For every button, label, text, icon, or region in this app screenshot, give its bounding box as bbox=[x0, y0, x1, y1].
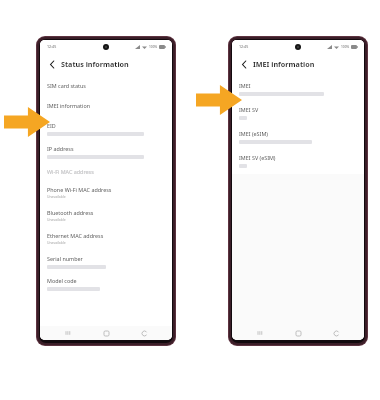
button[interactable]: IMEI SV bbox=[232, 102, 364, 126]
button[interactable]: IMEI SV (eSIM) bbox=[232, 150, 364, 174]
staticText: Unavailable bbox=[47, 240, 66, 245]
staticText: SIM card status bbox=[47, 82, 86, 89]
staticText: 100% bbox=[341, 45, 350, 49]
staticText: IP address bbox=[47, 145, 74, 152]
staticText: Wi-Fi MAC address bbox=[47, 168, 94, 175]
staticText: Model code bbox=[47, 277, 77, 284]
button[interactable]: Ethernet MAC address bbox=[40, 228, 172, 251]
button[interactable]: IP address bbox=[40, 141, 172, 164]
button[interactable]: Serial number bbox=[40, 251, 172, 273]
staticText: Status information bbox=[61, 59, 129, 69]
staticText: Bluetooth address bbox=[47, 209, 94, 216]
staticText: IMEI bbox=[239, 82, 251, 89]
button[interactable]: SIM card status bbox=[40, 78, 172, 98]
staticText: 12:45 bbox=[47, 44, 57, 49]
button[interactable]: Back bbox=[134, 326, 154, 340]
button[interactable]: IMEI (eSIM) bbox=[232, 126, 364, 150]
button[interactable]: Wi-Fi MAC address bbox=[40, 164, 172, 182]
staticText: Phone Wi-Fi MAC address bbox=[47, 186, 112, 193]
button[interactable]: Back bbox=[46, 58, 58, 70]
button[interactable]: Model code bbox=[40, 273, 172, 295]
button[interactable]: Home bbox=[96, 326, 116, 340]
button[interactable]: IMEI information bbox=[40, 98, 172, 118]
staticText: IMEI information bbox=[253, 59, 315, 69]
staticText: IMEI (eSIM) bbox=[239, 130, 268, 137]
button[interactable]: Back bbox=[326, 326, 346, 340]
button[interactable]: Back bbox=[238, 58, 250, 70]
staticText: Unavailable bbox=[47, 217, 66, 222]
button[interactable]: Recents bbox=[58, 326, 78, 340]
staticText: Ethernet MAC address bbox=[47, 232, 104, 239]
button[interactable]: Bluetooth address bbox=[40, 205, 172, 228]
button[interactable]: EID bbox=[40, 118, 172, 141]
staticText: Unavailable bbox=[47, 194, 66, 199]
button[interactable]: IMEI bbox=[232, 78, 364, 102]
staticText: 100% bbox=[149, 45, 158, 49]
staticText: Serial number bbox=[47, 255, 83, 262]
staticText: 12:45 bbox=[239, 44, 249, 49]
button[interactable]: Phone Wi-Fi MAC address bbox=[40, 182, 172, 205]
staticText: EID bbox=[47, 122, 56, 129]
button[interactable]: Recents bbox=[250, 326, 270, 340]
staticText: IMEI SV (eSIM) bbox=[239, 154, 276, 161]
staticText: IMEI SV bbox=[239, 106, 259, 113]
button[interactable]: Home bbox=[288, 326, 308, 340]
staticText: IMEI information bbox=[47, 102, 91, 109]
